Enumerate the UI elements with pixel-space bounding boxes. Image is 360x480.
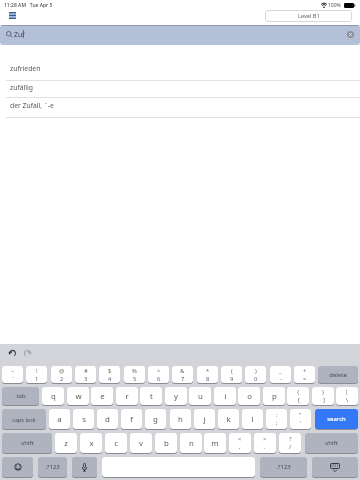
button[interactable]: shift (305, 433, 358, 453)
staticText: ; (276, 419, 278, 427)
button[interactable] (72, 457, 97, 477)
staticText: f (130, 414, 133, 425)
button[interactable]: .?123 (38, 457, 67, 477)
button[interactable] (2, 457, 33, 477)
button[interactable]: Level B1 (265, 10, 352, 22)
button[interactable]: _ (270, 366, 291, 383)
button[interactable]: a (49, 409, 70, 429)
button[interactable]: $ (99, 366, 120, 383)
button[interactable] (0, 81, 360, 98)
button[interactable]: { (287, 387, 309, 405)
staticText: _ (279, 367, 282, 375)
staticText: ! (36, 367, 38, 375)
button[interactable]: ! (26, 366, 47, 383)
button[interactable]: Zuf (0, 25, 360, 45)
button[interactable]: < (229, 433, 251, 453)
staticText: q (51, 391, 56, 402)
button[interactable]: > (254, 433, 276, 453)
staticText: Level B1 (298, 12, 320, 20)
button[interactable]: * (197, 366, 218, 383)
staticText: : (276, 411, 278, 419)
button[interactable]: tab (2, 387, 39, 405)
button[interactable]: + (294, 366, 315, 383)
staticText: tab (16, 392, 26, 400)
button[interactable]: g (145, 409, 166, 429)
button[interactable]: " (290, 409, 311, 429)
button[interactable]: .?123 (260, 457, 307, 477)
button[interactable]: s (73, 409, 94, 429)
staticText: ' (300, 419, 302, 427)
button[interactable]: r (116, 387, 138, 405)
button[interactable]: e (91, 387, 113, 405)
staticText: shift (325, 439, 338, 447)
staticText: ] (323, 396, 325, 404)
button[interactable]: y (165, 387, 187, 405)
button[interactable]: & (172, 366, 193, 383)
staticText: 2 (60, 375, 64, 383)
button[interactable] (6, 9, 18, 21)
staticText: # (84, 367, 88, 375)
staticText: h (178, 414, 183, 425)
staticText: d (105, 414, 110, 425)
staticText: shift (21, 439, 34, 447)
button[interactable]: ^ (148, 366, 169, 383)
staticText: m (211, 438, 219, 449)
staticText: = (303, 375, 307, 383)
button[interactable]: j (194, 409, 215, 429)
staticText: n (189, 438, 194, 449)
button[interactable]: | (336, 387, 358, 405)
staticText: 3 (84, 375, 88, 383)
button[interactable]: ) (245, 366, 266, 383)
button[interactable]: q (42, 387, 64, 405)
button[interactable]: t (140, 387, 162, 405)
staticText: c (114, 438, 118, 449)
button[interactable]: @ (51, 366, 72, 383)
button[interactable]: l (242, 409, 263, 429)
button[interactable]: d (97, 409, 118, 429)
button[interactable] (0, 45, 360, 81)
staticText: x (89, 438, 94, 449)
staticText: o (247, 391, 252, 402)
staticText: < (238, 435, 242, 443)
button[interactable]: w (67, 387, 89, 405)
staticText: caps lock (12, 416, 36, 423)
button[interactable] (312, 457, 358, 477)
button[interactable]: m (204, 433, 226, 453)
staticText: .?123 (45, 463, 60, 471)
button[interactable]: x (80, 433, 102, 453)
staticText: ) (255, 367, 257, 375)
button[interactable]: : (266, 409, 287, 429)
button[interactable]: n (180, 433, 202, 453)
staticText: } (322, 388, 325, 396)
button[interactable]: k (218, 409, 239, 429)
staticText: \ (346, 396, 349, 404)
button[interactable]: b (155, 433, 177, 453)
button[interactable]: ( (221, 366, 242, 383)
staticText: zufällig (10, 83, 33, 92)
button[interactable]: f (121, 409, 142, 429)
button[interactable]: } (312, 387, 334, 405)
button[interactable]: ~ (2, 366, 23, 383)
button[interactable]: % (124, 366, 145, 383)
staticText: delete (329, 371, 347, 379)
button[interactable]: h (170, 409, 191, 429)
button[interactable]: i (214, 387, 236, 405)
staticText: 0 (254, 375, 258, 383)
button[interactable]: o (238, 387, 260, 405)
button[interactable]: # (75, 366, 96, 383)
button[interactable]: u (189, 387, 211, 405)
button[interactable] (0, 98, 360, 118)
button[interactable]: c (105, 433, 127, 453)
button[interactable]: z (55, 433, 77, 453)
staticText: @ (59, 367, 65, 375)
button[interactable]: shift (2, 433, 52, 453)
button[interactable]: p (263, 387, 285, 405)
button[interactable]: search (315, 409, 358, 429)
button[interactable]: v (130, 433, 152, 453)
button[interactable]: ? (279, 433, 301, 453)
button[interactable]: caps lock (2, 409, 46, 429)
staticText: 6 (157, 375, 161, 383)
staticText: ? (289, 435, 292, 443)
button[interactable]: delete (318, 366, 358, 383)
